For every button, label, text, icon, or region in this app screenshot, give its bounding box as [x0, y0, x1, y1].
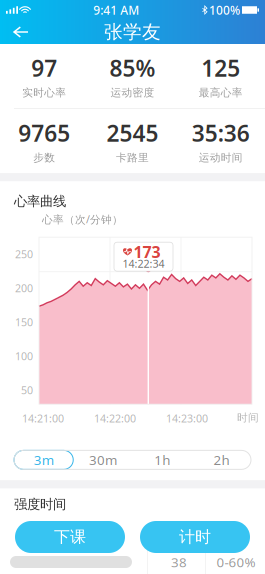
staticText: 250	[15, 247, 33, 261]
button[interactable]: 2h	[192, 450, 251, 469]
staticText: 100%	[209, 2, 240, 18]
staticText: 心率（次/分钟）	[42, 212, 123, 226]
staticText: 38	[171, 553, 187, 571]
staticText: 173	[133, 241, 160, 262]
staticText: 30m	[89, 451, 117, 469]
staticText: 卡路里	[116, 151, 149, 164]
staticText: 50	[21, 383, 33, 397]
staticText: 97	[31, 53, 57, 83]
staticText: 14:21:00	[22, 411, 64, 425]
staticText: 运动时间	[199, 151, 243, 164]
staticText: 2h	[213, 451, 229, 469]
staticText: 时间	[237, 411, 259, 424]
staticText: 3m	[34, 451, 54, 469]
button[interactable]: 1h	[132, 450, 192, 469]
staticText: 85%	[109, 53, 155, 83]
staticText: 2545	[106, 118, 158, 148]
staticText: 最高心率	[199, 86, 243, 99]
button[interactable]: Back	[7, 20, 35, 43]
staticText: 心率曲线	[14, 193, 66, 209]
staticText: 100	[15, 349, 33, 363]
staticText: 1h	[154, 451, 170, 469]
staticText: 150	[15, 315, 33, 329]
staticText: 0-60%	[216, 553, 255, 571]
staticText: 计时	[179, 527, 211, 547]
staticText: 35:36	[192, 118, 250, 148]
button[interactable]: 3m	[14, 450, 73, 469]
staticText: 9765	[18, 118, 70, 148]
staticText: 实时心率	[22, 86, 66, 99]
staticText: 下课	[54, 527, 86, 547]
staticText: 运动密度	[110, 86, 154, 99]
staticText: 125	[201, 53, 240, 83]
button[interactable]: 30m	[73, 450, 132, 469]
staticText: 14:22:00	[94, 411, 136, 425]
staticText: 强度时间	[14, 496, 66, 513]
button[interactable]: 下课	[15, 521, 125, 553]
staticText: 步数	[33, 151, 55, 164]
staticText: 14:22:34	[122, 257, 164, 271]
staticText: 14:23:00	[166, 411, 208, 425]
staticText: 9:41 AM	[93, 2, 139, 18]
button[interactable]: 计时	[140, 521, 250, 553]
staticText: 张学友	[104, 20, 161, 43]
staticText: 200	[15, 281, 33, 295]
